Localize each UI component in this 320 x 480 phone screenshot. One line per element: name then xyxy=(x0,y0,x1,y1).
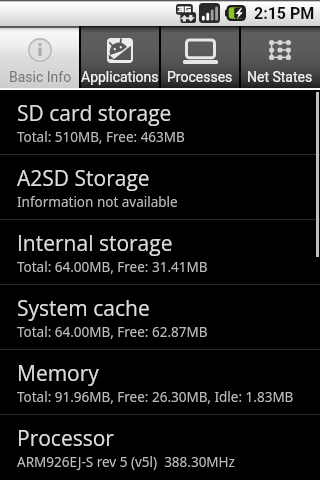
button[interactable]: Processor xyxy=(0,415,320,479)
button[interactable]: Basic Info xyxy=(0,26,80,90)
button[interactable]: SD card storage xyxy=(0,90,320,154)
staticText: Total: 64.00MB, Free: 31.41MB xyxy=(17,258,208,276)
button[interactable]: A2SD Storage xyxy=(0,155,320,219)
staticText: Information not available xyxy=(17,193,178,211)
other: Net States xyxy=(269,40,291,60)
staticText: Memory xyxy=(17,359,99,388)
staticText: Applications xyxy=(81,69,159,85)
staticText: SD card storage xyxy=(17,99,172,128)
staticText: 2:15 PM xyxy=(254,4,315,23)
other: Basic Info xyxy=(28,38,52,62)
staticText: Net States xyxy=(247,69,313,85)
staticText: Total: 510MB, Free: 463MB xyxy=(17,128,185,146)
staticText: Total: 64.00MB, Free: 62.87MB xyxy=(17,323,208,341)
button[interactable]: Applications xyxy=(80,26,160,90)
staticText: Processes xyxy=(167,69,233,85)
staticText: ARM926EJ-S rev 5 (v5l) 388.30MHz xyxy=(17,453,235,471)
staticText: Basic Info xyxy=(9,69,72,85)
button[interactable]: Net States xyxy=(240,26,320,90)
staticText: Total: 91.96MB, Free: 26.30MB, Idle: 1.8… xyxy=(17,388,294,406)
staticText: Internal storage xyxy=(17,229,173,258)
other: Processes xyxy=(183,40,218,64)
staticText: System cache xyxy=(17,294,150,323)
staticText: Processor xyxy=(17,424,114,453)
button[interactable]: Internal storage xyxy=(0,220,320,284)
button[interactable]: System cache xyxy=(0,285,320,349)
button[interactable]: Processes xyxy=(160,26,240,90)
staticText: A2SD Storage xyxy=(17,164,150,193)
other: Applications xyxy=(107,38,133,63)
button[interactable]: Memory xyxy=(0,350,320,414)
